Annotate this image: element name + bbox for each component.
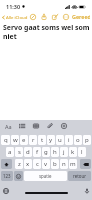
staticText: f [36, 148, 39, 156]
button[interactable]: More options [61, 12, 71, 22]
button[interactable]: Dictate [82, 186, 91, 195]
staticText: retour [73, 173, 86, 179]
button[interactable]: y [47, 135, 55, 145]
button[interactable]: Gereed [71, 13, 90, 20]
button[interactable]: q [1, 135, 10, 145]
staticText: g [44, 148, 48, 156]
staticText: Gereed [72, 13, 90, 20]
button[interactable]: t [38, 135, 46, 145]
staticText: Servo gaat soms wel soms [3, 23, 89, 32]
button[interactable]: spatie [24, 171, 67, 181]
staticText: m [70, 160, 76, 168]
staticText: x [26, 160, 30, 168]
staticText: b [53, 160, 57, 168]
staticText: c [36, 160, 39, 168]
button[interactable]: u [56, 135, 64, 145]
staticText: y [49, 136, 53, 144]
button[interactable]: d [24, 147, 32, 157]
staticText: r [32, 136, 35, 144]
staticText: u [58, 136, 62, 144]
button[interactable]: i [65, 135, 73, 145]
button[interactable]: o [74, 135, 82, 145]
button[interactable]: g [42, 147, 50, 157]
button[interactable]: m [69, 159, 77, 169]
button[interactable]: l [78, 147, 86, 157]
button[interactable]: Alle iCloud [0, 14, 28, 20]
button[interactable]: Shift [1, 159, 12, 169]
staticText: q [4, 136, 8, 144]
staticText: d [26, 148, 30, 156]
staticText: Aa [5, 123, 12, 130]
button[interactable]: Camera [59, 121, 69, 131]
staticText: Alle iCloud [6, 14, 28, 20]
staticText: l [81, 148, 83, 156]
staticText: z [18, 160, 21, 168]
staticText: niet [3, 32, 17, 41]
staticText: t [41, 136, 44, 144]
button[interactable]: e [20, 135, 28, 145]
button[interactable]: h [51, 147, 59, 157]
button[interactable]: Checklist [17, 121, 27, 131]
button[interactable]: Table [31, 121, 41, 131]
button[interactable]: f [33, 147, 41, 157]
staticText: e [22, 136, 26, 144]
button[interactable]: v [42, 159, 50, 169]
staticText: i [68, 136, 70, 144]
button[interactable]: Backspace [80, 159, 91, 169]
button[interactable]: Share [39, 12, 49, 22]
button[interactable]: Text format [3, 121, 13, 131]
button[interactable]: b [51, 159, 59, 169]
button[interactable]: retour [68, 171, 91, 181]
staticText: s [18, 148, 21, 156]
staticText: k [71, 148, 75, 156]
staticText: spatie [39, 173, 52, 179]
button[interactable]: Markup [28, 12, 38, 22]
button[interactable]: c [33, 159, 41, 169]
button[interactable]: x [24, 159, 32, 169]
staticText: 123 [3, 173, 11, 179]
staticText: p [85, 136, 89, 144]
button[interactable]: a [6, 147, 14, 157]
staticText: w [13, 136, 18, 144]
button[interactable]: j [60, 147, 68, 157]
staticText: j [63, 148, 65, 156]
button[interactable]: w [11, 135, 19, 145]
staticText: h [53, 148, 57, 156]
button[interactable]: k [69, 147, 77, 157]
staticText: n [62, 160, 66, 168]
staticText: v [44, 160, 48, 168]
button[interactable]: s [15, 147, 23, 157]
button[interactable]: p [83, 135, 91, 145]
staticText: o [76, 136, 80, 144]
button[interactable]: 123 [1, 171, 13, 181]
staticText: a [8, 148, 12, 156]
button[interactable]: Switch keyboard [1, 186, 10, 195]
button[interactable]: Attach file [45, 121, 55, 131]
button[interactable]: n [60, 159, 68, 169]
button[interactable]: Emoji [14, 171, 23, 181]
button[interactable]: New note [50, 12, 60, 22]
button[interactable]: r [29, 135, 37, 145]
button[interactable]: z [15, 159, 23, 169]
staticText: 11:30 [6, 3, 21, 10]
